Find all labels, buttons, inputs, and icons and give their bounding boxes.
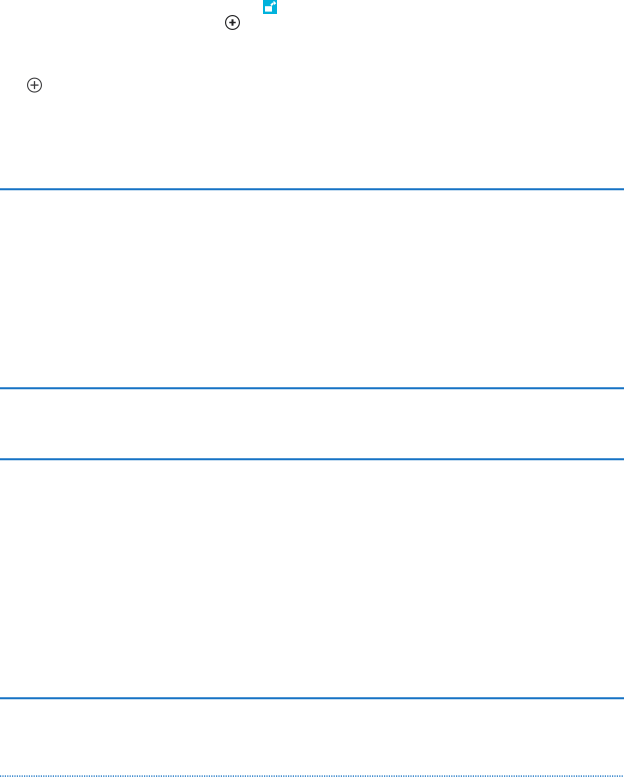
button[interactable]: Open app [263, 0, 277, 14]
button[interactable]: Add item [27, 78, 42, 93]
button[interactable]: Add [225, 15, 240, 30]
